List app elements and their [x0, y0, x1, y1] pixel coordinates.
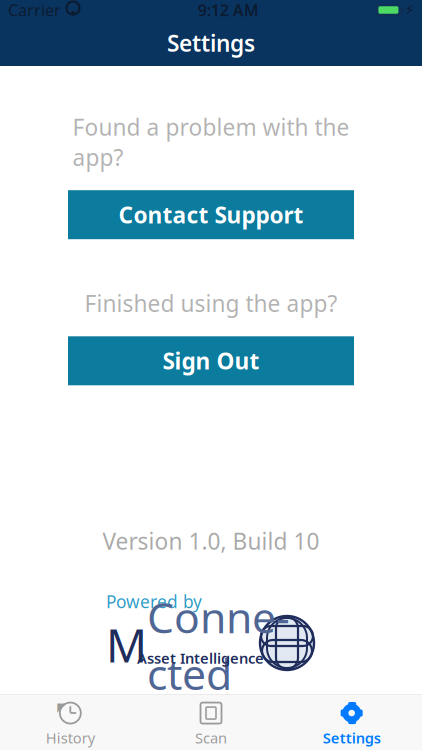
staticText: Finished using the app?	[84, 288, 337, 318]
staticText: Connected	[147, 588, 290, 702]
staticText: Asset Intelligence	[137, 648, 264, 668]
button[interactable]: Contact Support	[68, 190, 354, 239]
staticText: Settings	[167, 28, 255, 58]
staticText: Found a problem with the app?	[72, 112, 349, 172]
button[interactable]: Settings	[281, 695, 422, 750]
staticText: Settings	[323, 728, 381, 748]
button[interactable]: ◤	[0, 695, 141, 750]
staticText: Sign Out	[162, 346, 259, 376]
staticText: Carrier	[8, 0, 61, 21]
button[interactable]: Scan	[141, 695, 281, 750]
staticText: ◤	[57, 700, 66, 714]
staticText: Scan	[195, 728, 227, 748]
staticText: History	[46, 728, 95, 748]
staticText: M	[106, 615, 147, 675]
staticText: Contact Support	[118, 200, 303, 230]
staticText: Version 1.0, Build 10	[102, 526, 319, 556]
staticText: 9:12 AM	[198, 0, 259, 21]
staticText: ⚡︎	[405, 2, 414, 17]
staticText: Powered by	[106, 590, 202, 613]
button[interactable]: Sign Out	[68, 336, 354, 385]
